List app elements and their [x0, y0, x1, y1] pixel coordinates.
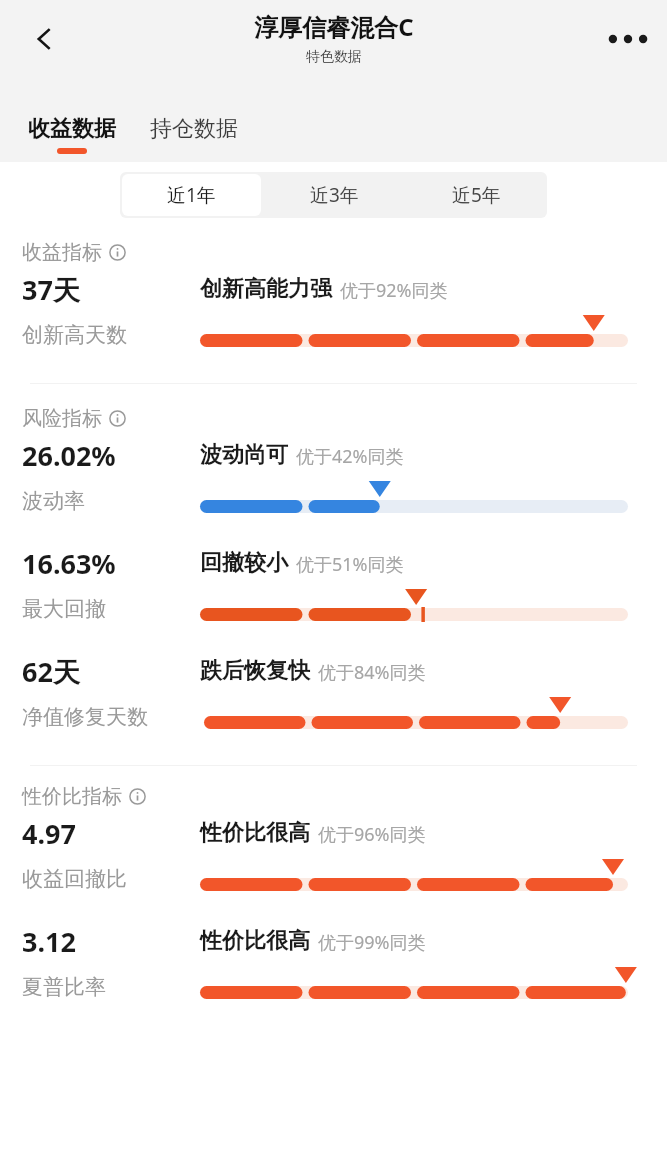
staticText: 性价比很高	[200, 927, 310, 955]
staticText: 波动尚可	[200, 441, 288, 469]
button[interactable]: More options	[597, 8, 659, 70]
staticText: 波动率	[22, 488, 85, 514]
staticText: 跌后恢复快	[200, 657, 310, 685]
button[interactable]: 收益数据	[26, 113, 118, 156]
staticText: 夏普比率	[22, 974, 106, 1000]
button[interactable]: 近1年	[122, 174, 261, 216]
staticText: 优于84%同类	[318, 660, 426, 685]
staticText: 26.02%	[22, 437, 116, 474]
staticText: 62天	[22, 653, 80, 690]
staticText: 净值修复天数	[22, 704, 148, 730]
staticText: 回撤较小	[200, 549, 288, 577]
staticText: 16.63%	[22, 545, 116, 582]
staticText: 性价比很高	[200, 819, 310, 847]
button[interactable]: 4.97	[0, 813, 667, 907]
staticText: 近1年	[167, 182, 216, 208]
staticText: 特色数据	[306, 48, 362, 66]
staticText: 收益回撤比	[22, 866, 127, 892]
staticText: 创新高能力强	[200, 275, 332, 303]
staticText: 近3年	[310, 182, 359, 208]
button[interactable]: 3.12	[0, 921, 667, 1015]
staticText: 创新高天数	[22, 322, 127, 348]
staticText: 淳厚信睿混合C	[254, 10, 414, 43]
staticText: 性价比指标	[22, 784, 122, 809]
staticText: 37天	[22, 271, 80, 308]
staticText: 优于96%同类	[318, 822, 426, 847]
staticText: 优于42%同类	[296, 444, 404, 469]
button[interactable]: 26.02%	[0, 435, 667, 529]
staticText: 风险指标	[22, 406, 102, 431]
staticText: 优于99%同类	[318, 930, 426, 955]
staticText: 最大回撤	[22, 596, 106, 622]
button[interactable]: 62天	[0, 651, 667, 745]
button[interactable]: 16.63%	[0, 543, 667, 637]
staticText: 收益指标	[22, 240, 102, 265]
staticText: 优于92%同类	[340, 278, 448, 303]
button[interactable]: 持仓数据	[148, 113, 240, 156]
button[interactable]: Back	[14, 8, 76, 70]
button[interactable]: 近5年	[407, 174, 545, 216]
button[interactable]: 近3年	[265, 174, 403, 216]
button[interactable]: 37天	[0, 269, 667, 363]
staticText: 持仓数据	[150, 115, 238, 143]
staticText: 3.12	[22, 923, 76, 960]
staticText: 近5年	[452, 182, 501, 208]
staticText: 收益数据	[28, 115, 116, 143]
staticText: 4.97	[22, 815, 76, 852]
staticText: 优于51%同类	[296, 552, 404, 577]
